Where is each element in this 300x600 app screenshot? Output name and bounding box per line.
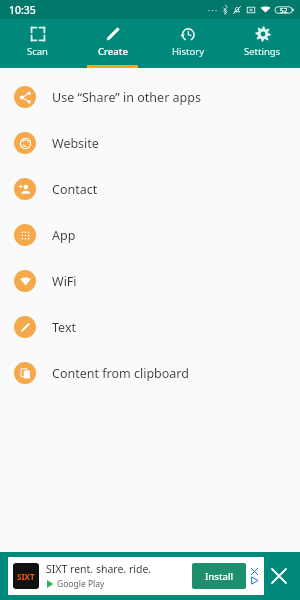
staticText: SIXT — [17, 571, 35, 582]
staticText: Contact — [52, 181, 98, 198]
button[interactable]: Use “Share” in other apps — [0, 74, 300, 120]
button[interactable]: Close ad — [264, 552, 294, 600]
staticText: Text — [52, 319, 77, 336]
staticText: Settings — [244, 45, 281, 58]
button[interactable]: Settings — [225, 19, 300, 68]
staticText: Content from clipboard — [52, 365, 189, 382]
staticText: History — [172, 45, 204, 58]
button[interactable]: Install — [192, 563, 246, 589]
staticText: Install — [205, 570, 234, 583]
staticText: 10:35 — [9, 3, 36, 17]
button[interactable]: Ad info — [250, 568, 259, 585]
button[interactable]: Scan — [0, 19, 75, 68]
button[interactable]: App — [0, 212, 300, 258]
button[interactable]: Create — [75, 19, 150, 68]
button[interactable]: Contact — [0, 166, 300, 212]
staticText: Use “Share” in other apps — [52, 89, 201, 106]
staticText: Google Play — [57, 578, 105, 590]
staticText: Create — [98, 45, 128, 58]
button[interactable]: SIXT — [8, 557, 264, 595]
staticText: App — [52, 227, 76, 244]
staticText: Scan — [27, 45, 48, 58]
button[interactable]: History — [150, 19, 225, 68]
button[interactable]: Content from clipboard — [0, 350, 300, 396]
button[interactable]: Text — [0, 304, 300, 350]
button[interactable]: Website — [0, 120, 300, 166]
staticText: SIXT rent. share. ride. — [46, 562, 152, 576]
button[interactable]: WiFi — [0, 258, 300, 304]
staticText: Website — [52, 135, 99, 152]
staticText: 52 — [280, 6, 288, 15]
staticText: WiFi — [52, 273, 77, 290]
